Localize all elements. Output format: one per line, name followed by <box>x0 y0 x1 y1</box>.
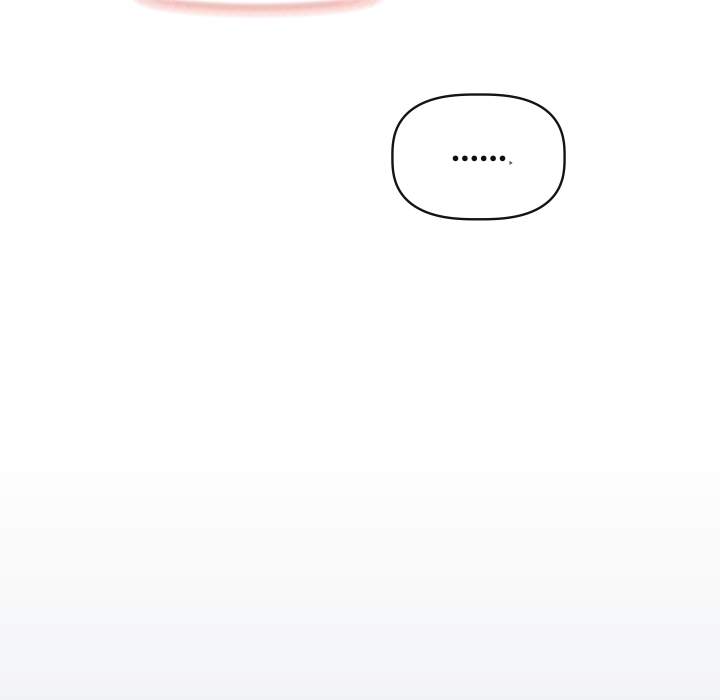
button[interactable]: Comic panel, tap to show reader controls <box>0 0 720 700</box>
